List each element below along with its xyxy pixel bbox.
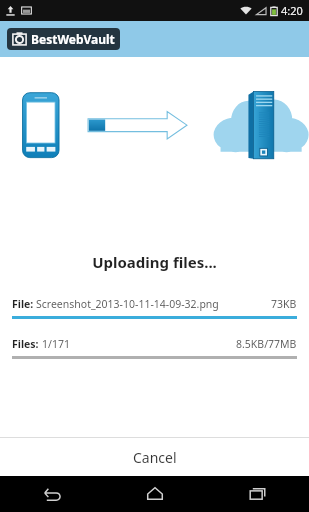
- staticText: 8.5KB/77MB: [236, 337, 297, 351]
- button[interactable]: Back: [0, 476, 103, 512]
- staticText: Uploading files...: [0, 252, 309, 272]
- staticText: 73KB: [271, 297, 297, 311]
- button[interactable]: Recents: [206, 476, 309, 512]
- staticText: 4:20: [281, 3, 303, 18]
- staticText: Screenshot_2013-10-11-14-09-32.png: [36, 297, 271, 311]
- staticText: BestWebVault: [31, 31, 115, 47]
- staticText: Cancel: [133, 448, 177, 467]
- button[interactable]: Cancel: [0, 438, 309, 476]
- staticText: Files:: [12, 337, 42, 351]
- staticText: File:: [12, 297, 36, 311]
- button[interactable]: Home: [103, 476, 206, 512]
- staticText: 1/171: [42, 337, 236, 351]
- button[interactable]: BestWebVault: [7, 28, 120, 50]
